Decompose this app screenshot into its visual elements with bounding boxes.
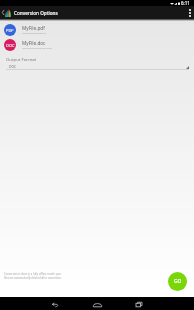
- staticText: Conversion Options: [14, 10, 58, 16]
- button[interactable]: Output Format: [0, 56, 194, 70]
- staticText: MyFile.pdf: [22, 25, 45, 31]
- button[interactable]: Recent apps: [124, 298, 154, 310]
- button[interactable]: GO: [168, 272, 187, 291]
- staticText: /storage/emulated/0/Docs: [22, 46, 53, 49]
- staticText: 6:11: [181, 0, 190, 6]
- staticText: Output Format: [6, 56, 37, 62]
- button[interactable]: Back: [40, 298, 70, 310]
- staticText: Conversion is done in a fully offline mo…: [4, 272, 62, 280]
- button[interactable]: Home: [82, 298, 112, 310]
- staticText: MyFile.doc: [22, 40, 46, 46]
- staticText: PDF: [6, 28, 14, 33]
- staticText: GO: [174, 278, 182, 285]
- button[interactable]: More options: [184, 6, 194, 19]
- button[interactable]: Navigate up: [0, 6, 5, 19]
- button[interactable]: DOC: [0, 37, 194, 52]
- button[interactable]: PDF: [0, 22, 194, 37]
- staticText: DOC: [9, 64, 17, 69]
- staticText: /storage/emulated/0: [22, 31, 46, 34]
- staticText: DOC: [6, 43, 15, 48]
